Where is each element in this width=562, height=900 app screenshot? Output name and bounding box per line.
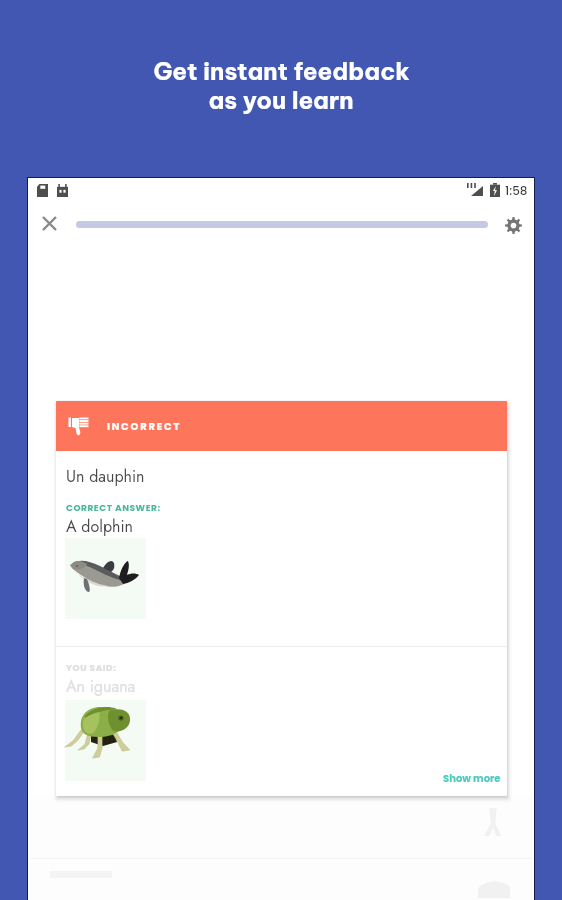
staticText: Get instant feedback [153,56,410,86]
staticText: YOU SAID: [66,662,117,675]
staticText: 1:58 [505,182,528,199]
staticText: Un dauphin [66,465,145,488]
button[interactable]: Close [30,204,68,242]
staticText: A dolphin [66,515,133,538]
button[interactable]: Show more [443,771,501,785]
staticText: An iguana [66,675,136,698]
staticText: as you learn [208,85,354,115]
staticText: CORRECT ANSWER: [66,502,161,515]
button[interactable]: Settings [493,205,533,245]
staticText: INCORRECT [107,419,182,433]
